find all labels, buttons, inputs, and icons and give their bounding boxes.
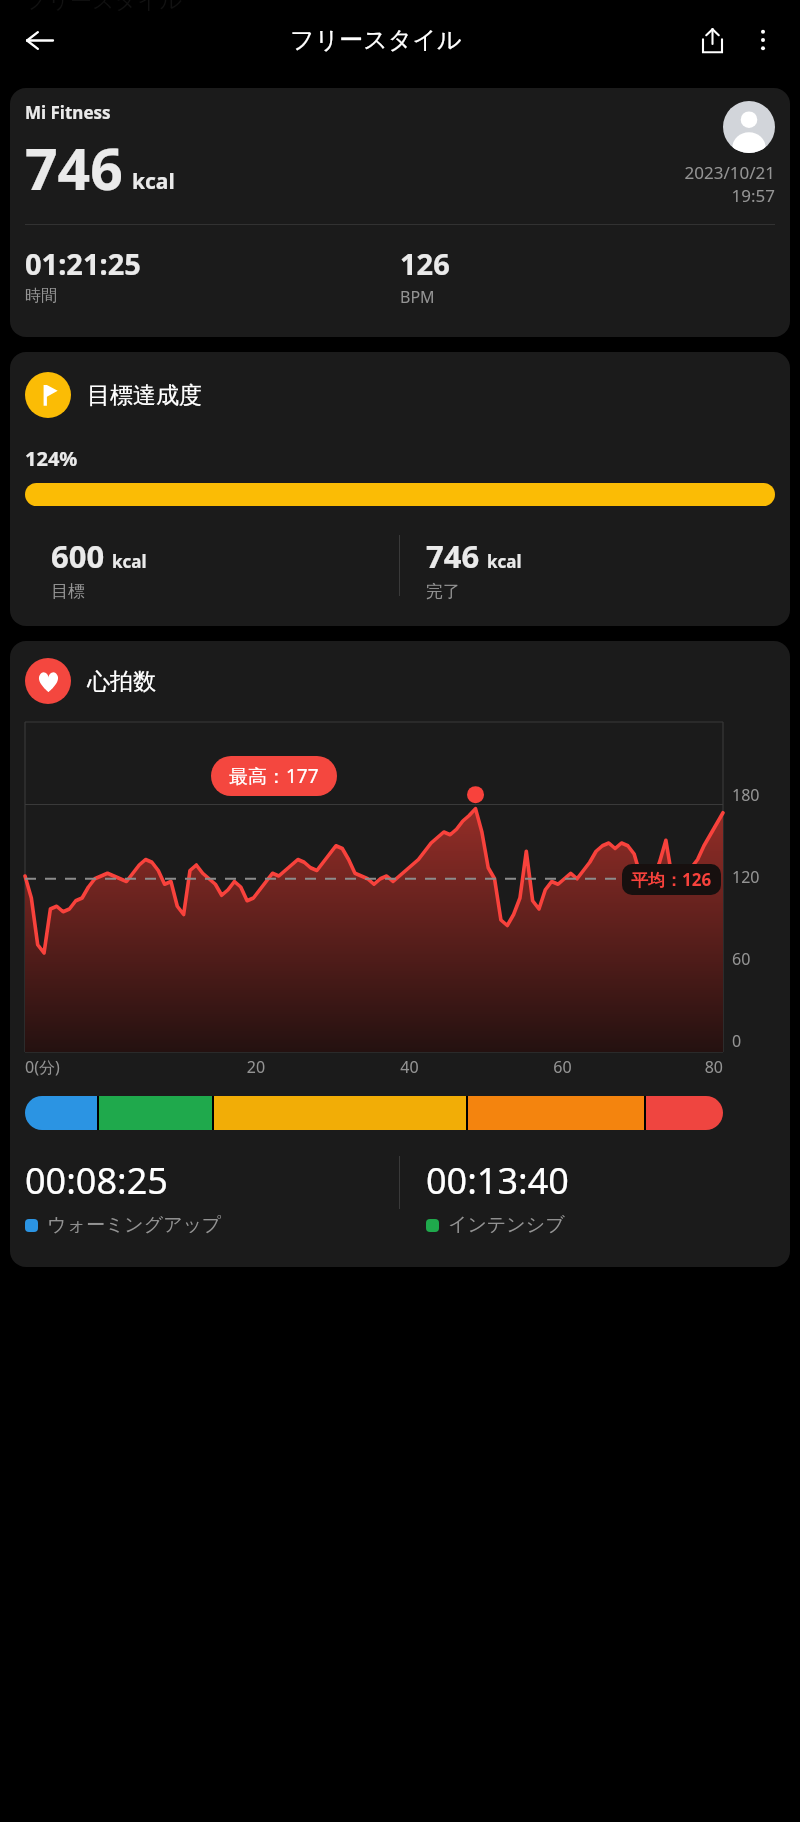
staticText: 0 bbox=[732, 1030, 742, 1052]
staticText: インテンシブ bbox=[448, 1213, 565, 1237]
staticText: ウォーミングアップ bbox=[47, 1213, 222, 1237]
staticText: 19:57 bbox=[731, 184, 775, 207]
staticText: フリースタイル bbox=[25, 0, 183, 15]
staticText: 746 bbox=[25, 129, 123, 207]
staticText: 120 bbox=[732, 866, 760, 888]
staticText: 40 bbox=[333, 1056, 486, 1078]
staticText: 平均：126 bbox=[631, 868, 712, 891]
staticText: Mi Fitness bbox=[25, 101, 111, 124]
button[interactable]: Profile bbox=[723, 101, 775, 153]
staticText: 60 bbox=[486, 1056, 639, 1078]
staticText: 80 bbox=[639, 1056, 723, 1078]
staticText: 124% bbox=[25, 445, 78, 472]
button[interactable]: Mi Fitness bbox=[10, 88, 790, 337]
button[interactable]: Share bbox=[686, 14, 738, 66]
staticText: BPM bbox=[400, 286, 435, 308]
staticText: 最高：177 bbox=[229, 763, 319, 789]
staticText: 6622093462 bbox=[27, 0, 285, 8]
staticText: 0(分) bbox=[25, 1056, 179, 1078]
staticText: 心拍数 bbox=[87, 667, 156, 696]
staticText: 目標 bbox=[51, 581, 85, 602]
button[interactable]: 目標達成度 bbox=[10, 352, 790, 626]
staticText: 60 bbox=[732, 948, 751, 970]
staticText: 目標達成度 bbox=[87, 381, 202, 410]
button[interactable]: More options bbox=[738, 15, 788, 65]
staticText: 01:21:25 bbox=[25, 244, 141, 283]
button[interactable]: 心拍数 bbox=[10, 641, 790, 1267]
staticText: kcal bbox=[112, 550, 147, 573]
staticText: 600 bbox=[51, 535, 105, 577]
staticText: 180 bbox=[732, 784, 760, 806]
staticText: 2023/10/21 bbox=[684, 161, 775, 184]
staticText: kcal bbox=[132, 167, 175, 196]
button[interactable]: Back bbox=[12, 13, 66, 67]
staticText: 746 bbox=[426, 535, 480, 577]
staticText: 00:13:40 bbox=[426, 1156, 569, 1205]
staticText: 20 bbox=[179, 1056, 333, 1078]
staticText: フリースタイル bbox=[290, 25, 462, 55]
staticText: kcal bbox=[487, 550, 522, 573]
staticText: 時間 bbox=[25, 286, 57, 306]
staticText: 00:08:25 bbox=[25, 1156, 168, 1205]
staticText: 126 bbox=[400, 244, 450, 283]
staticText: 完了 bbox=[426, 581, 460, 602]
